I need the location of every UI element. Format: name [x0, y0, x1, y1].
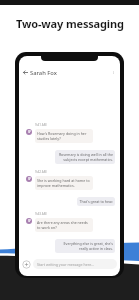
- button[interactable]: Are there any areas she needs to work on…: [35, 218, 93, 232]
- staticText: She is working hard at home to improve m…: [37, 178, 91, 188]
- button[interactable]: She is working hard at home to improve m…: [35, 176, 93, 190]
- button[interactable]: Back: [23, 70, 28, 75]
- button[interactable]: How's Rosemary doing in her studies late…: [35, 129, 93, 143]
- button[interactable]: That's great to hear.: [77, 197, 115, 206]
- staticText: 9:42 AM: [35, 170, 47, 174]
- staticText: Everything else is great, she's really a…: [57, 241, 113, 251]
- staticText: Two-way messaging: [16, 16, 124, 31]
- staticText: Start writing your message here...: [37, 262, 95, 267]
- staticText: SF: [28, 219, 31, 223]
- button[interactable]: More options: [111, 70, 116, 75]
- button[interactable]: Everything else is great, she's really a…: [55, 239, 115, 253]
- staticText: Rosemary is doing well in all the subjec…: [57, 152, 113, 162]
- staticText: That's great to hear.: [79, 199, 113, 204]
- staticText: Are there any areas she needs to work on…: [37, 220, 91, 230]
- button[interactable]: Back: [19, 66, 120, 79]
- button[interactable]: Start writing your message here...: [33, 259, 117, 269]
- staticText: SF: [28, 130, 31, 134]
- staticText: 9:41 AM: [35, 123, 47, 127]
- button[interactable]: Rosemary is doing well in all the subjec…: [55, 150, 115, 164]
- button[interactable]: Add attachment: [22, 260, 31, 269]
- staticText: How's Rosemary doing in her studies late…: [37, 131, 91, 141]
- staticText: 9:43 AM: [35, 212, 47, 216]
- staticText: Sarah Fox: [30, 69, 57, 77]
- staticText: SF: [28, 177, 31, 181]
